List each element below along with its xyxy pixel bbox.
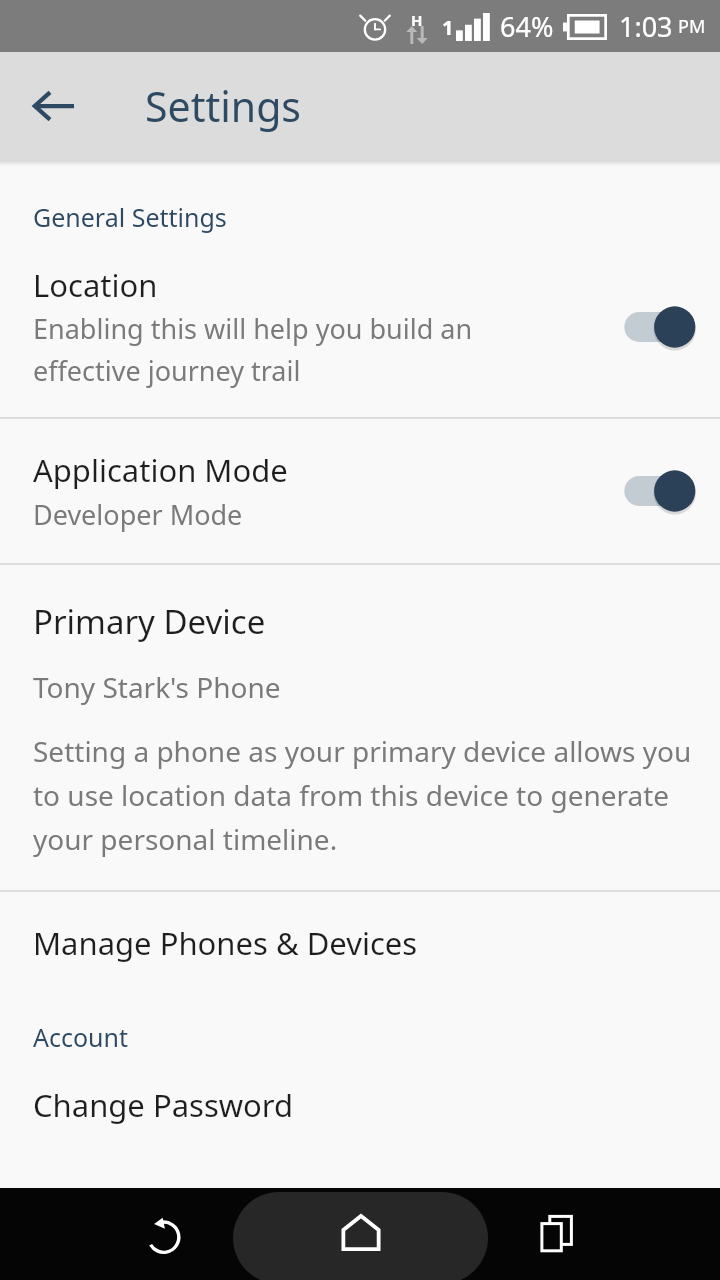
staticText: H [411, 10, 423, 30]
button[interactable]: Primary Device [0, 565, 720, 890]
staticText: Settings [145, 78, 302, 134]
button[interactable]: Manage Phones & Devices [0, 892, 720, 994]
button[interactable]: Toggle [620, 303, 692, 351]
staticText: Application Mode [33, 449, 288, 491]
staticText: Location [33, 264, 158, 306]
staticText: Change Password [33, 1084, 294, 1126]
staticText: Account [33, 1020, 129, 1054]
staticText: Developer Mode [33, 496, 243, 533]
button[interactable]: Back [123, 1194, 203, 1274]
button[interactable]: Change Password [0, 1054, 720, 1156]
staticText: Primary Device [33, 599, 266, 644]
staticText: Setting a phone as your primary device a… [33, 732, 692, 858]
staticText: 64% [500, 8, 554, 45]
button[interactable]: Application Mode [0, 419, 720, 563]
staticText: General Settings [33, 200, 227, 234]
button[interactable]: Home [233, 1192, 488, 1280]
staticText: 1 [442, 14, 454, 41]
staticText: 1:03 [619, 8, 673, 45]
button[interactable]: Toggle [620, 467, 692, 515]
staticText: Tony Stark's Phone [33, 668, 281, 706]
button[interactable]: Back [16, 68, 92, 144]
staticText: PM [678, 14, 706, 39]
staticText: Manage Phones & Devices [33, 922, 418, 964]
button[interactable]: Recents [517, 1194, 597, 1274]
staticText: Enabling this will help you build an eff… [33, 310, 473, 389]
button[interactable]: Location [0, 234, 720, 417]
